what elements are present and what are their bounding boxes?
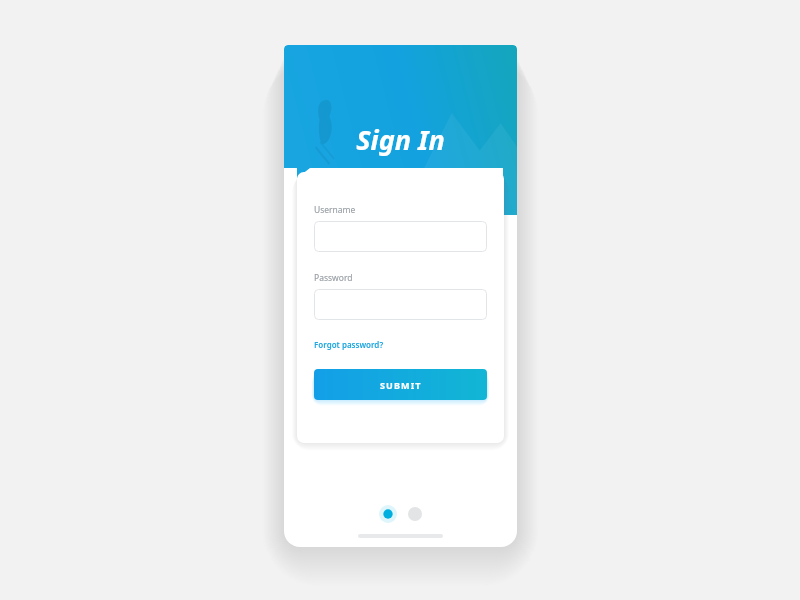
staticText: Sign In [356, 121, 445, 158]
staticText: Forgot password? [314, 339, 384, 350]
button[interactable] [314, 289, 487, 320]
button[interactable]: SUBMIT [314, 369, 487, 400]
button[interactable]: Page 1 [379, 505, 397, 523]
button[interactable]: Forgot password? [314, 338, 384, 351]
button[interactable]: Page 2 [408, 507, 422, 521]
staticText: Password [314, 272, 353, 284]
staticText: SUBMIT [380, 379, 422, 391]
staticText: Username [314, 204, 356, 216]
button[interactable] [314, 221, 487, 252]
